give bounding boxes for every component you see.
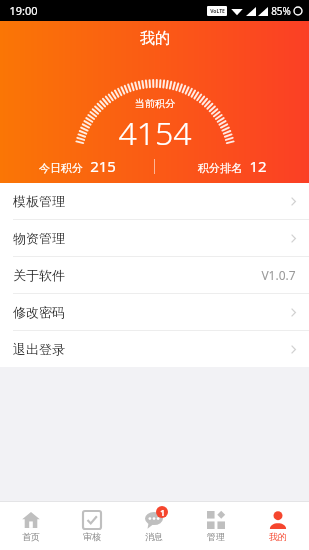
button[interactable]: 模板管理 bbox=[0, 183, 309, 220]
staticText: 消息 bbox=[145, 531, 163, 542]
staticText: 12 bbox=[249, 156, 267, 176]
staticText: V1.0.7 bbox=[261, 267, 296, 283]
button[interactable]: 物资管理 bbox=[0, 220, 309, 257]
staticText: 19:00 bbox=[9, 3, 38, 18]
staticText: 215 bbox=[90, 156, 116, 176]
staticText: 审核 bbox=[83, 531, 101, 542]
other: 管理 bbox=[207, 511, 225, 529]
staticText: 85% bbox=[271, 4, 291, 18]
staticText: 关于软件 bbox=[13, 267, 65, 283]
button[interactable]: 修改密码 bbox=[0, 294, 309, 331]
button[interactable]: 首页 bbox=[0, 502, 61, 550]
staticText: 当前积分 bbox=[135, 97, 175, 110]
staticText: 4154 bbox=[118, 111, 192, 155]
staticText: 模板管理 bbox=[13, 193, 65, 209]
button[interactable]: 消息 bbox=[123, 502, 185, 550]
staticText: 1 bbox=[160, 507, 165, 518]
other: 审核 bbox=[83, 511, 101, 529]
button[interactable]: 审核 bbox=[61, 502, 123, 550]
other: 首页 bbox=[22, 511, 40, 529]
staticText: 管理 bbox=[207, 531, 225, 542]
other: 消息 bbox=[145, 511, 163, 529]
staticText: 我的 bbox=[140, 29, 170, 48]
staticText: 首页 bbox=[22, 531, 40, 542]
staticText: 今日积分 bbox=[39, 161, 83, 175]
staticText: 修改密码 bbox=[13, 304, 65, 320]
staticText: 我的 bbox=[269, 531, 287, 542]
staticText: 物资管理 bbox=[13, 230, 65, 246]
button[interactable]: 关于软件 bbox=[0, 257, 309, 294]
staticText: 积分排名 bbox=[198, 161, 242, 175]
other: 我的 bbox=[269, 511, 287, 529]
button[interactable]: 我的 bbox=[247, 502, 309, 550]
button[interactable]: 退出登录 bbox=[0, 331, 309, 367]
staticText: VoLTE bbox=[210, 8, 225, 15]
staticText: 退出登录 bbox=[13, 341, 65, 357]
button[interactable]: 管理 bbox=[185, 502, 247, 550]
